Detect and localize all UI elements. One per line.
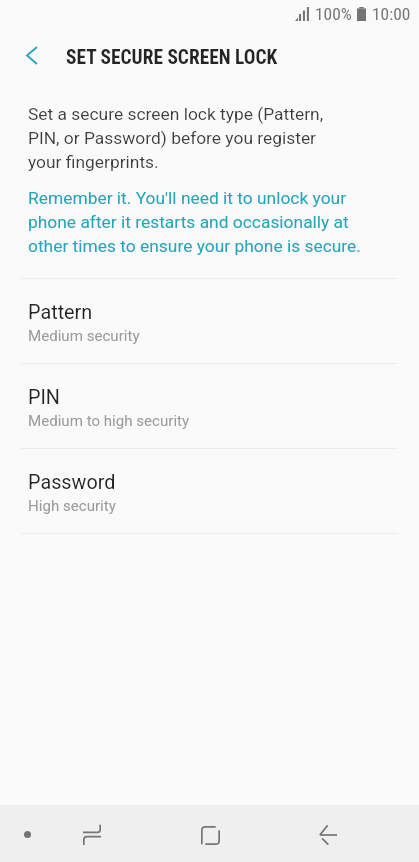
staticText: Medium to high security bbox=[28, 412, 190, 430]
button[interactable]: Pattern bbox=[0, 279, 419, 364]
button[interactable]: Show navigation bar bbox=[11, 818, 43, 850]
staticText: Remember it. You'll need it to unlock yo… bbox=[28, 185, 361, 257]
staticText: SET SECURE SCREEN LOCK bbox=[66, 46, 278, 69]
staticText: High security bbox=[28, 497, 116, 515]
staticText: Set a secure screen lock type (Pattern, … bbox=[28, 101, 324, 173]
staticText: Pattern bbox=[28, 301, 93, 324]
button[interactable]: PIN bbox=[0, 364, 419, 449]
button[interactable]: Back bbox=[306, 813, 350, 857]
button[interactable]: Home bbox=[188, 813, 232, 857]
staticText: Medium security bbox=[28, 327, 140, 345]
button[interactable]: Navigate up bbox=[12, 35, 52, 75]
staticText: PIN bbox=[28, 386, 60, 409]
staticText: 100% bbox=[315, 4, 352, 24]
staticText: 10:00 bbox=[372, 4, 411, 24]
button[interactable]: Password bbox=[0, 449, 419, 534]
staticText: Password bbox=[28, 471, 116, 494]
button[interactable]: Recent apps bbox=[70, 812, 114, 856]
